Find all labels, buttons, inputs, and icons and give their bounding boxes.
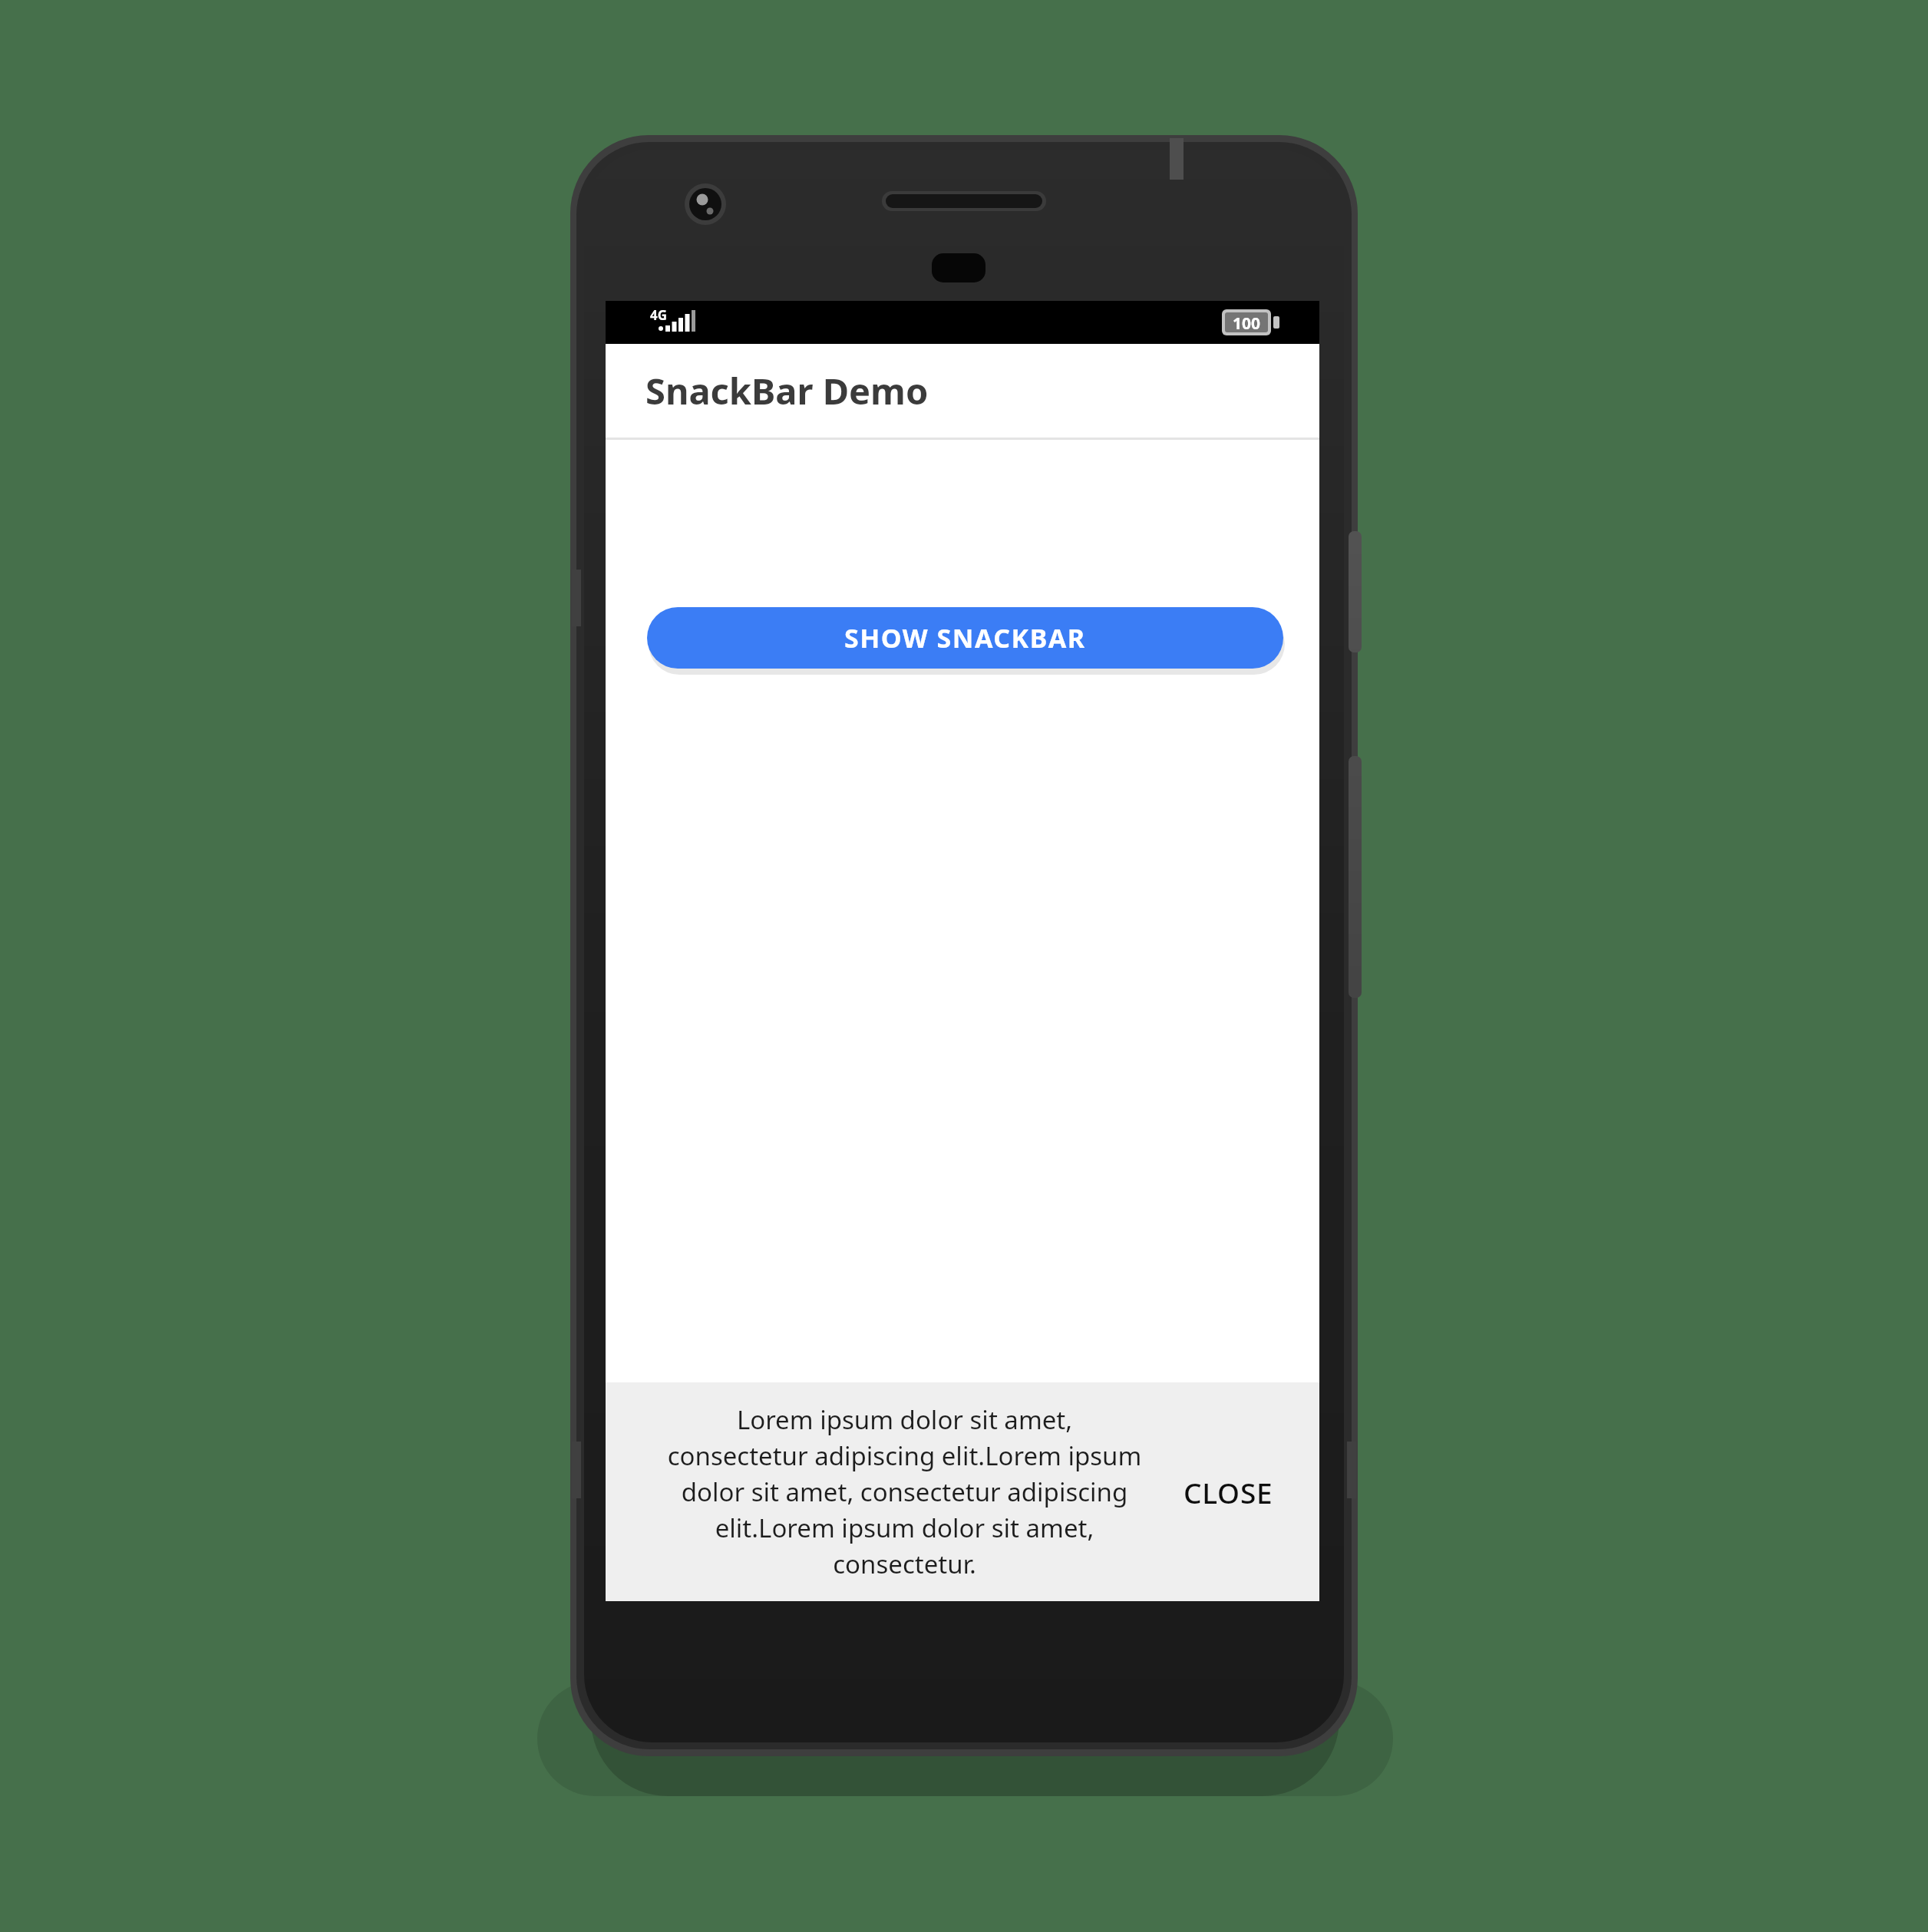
staticText: 4G xyxy=(650,306,668,324)
button[interactable]: SHOW SNACKBAR xyxy=(647,607,1283,669)
button[interactable]: CLOSE xyxy=(1176,1461,1281,1524)
staticText: CLOSE xyxy=(1184,1473,1273,1511)
staticText: 100 xyxy=(1233,312,1261,332)
staticText: Lorem ipsum dolor sit amet, consectetur … xyxy=(664,1402,1145,1581)
staticText: SHOW SNACKBAR xyxy=(844,620,1086,656)
staticText: SnackBar Demo xyxy=(645,366,929,415)
